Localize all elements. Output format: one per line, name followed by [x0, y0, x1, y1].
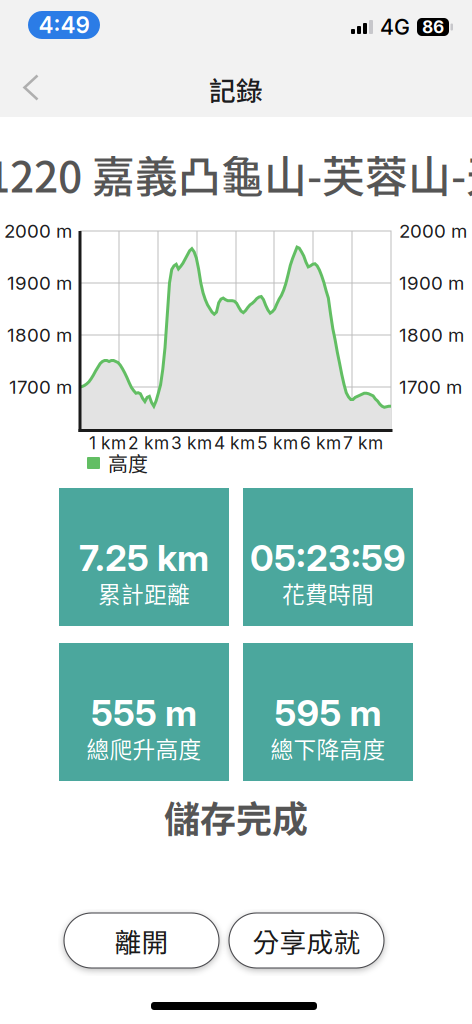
staticText: 2 km [128, 432, 169, 453]
staticText: 1220 嘉義凸龜山-芙蓉山-天 [0, 143, 472, 205]
staticText: 1700 m [399, 376, 462, 398]
staticText: 555 m [91, 691, 197, 735]
button[interactable]: 05:23:59 [243, 488, 413, 626]
staticText: 分享成就 [252, 921, 360, 960]
staticText: 7 km [343, 432, 383, 453]
button[interactable]: Back [9, 60, 53, 115]
staticText: 儲存完成 [164, 791, 308, 843]
staticText: 4:49 [38, 11, 89, 39]
staticText: 5 km [257, 432, 298, 453]
staticText: 高度 [108, 448, 148, 477]
button[interactable]: 555 m [59, 643, 229, 781]
staticText: 總爬升高度 [86, 732, 201, 764]
staticText: 1700 m [9, 376, 72, 398]
staticText: 總下降高度 [270, 732, 385, 764]
staticText: 6 km [300, 432, 341, 453]
staticText: 記錄 [209, 70, 263, 108]
staticText: 離開 [114, 921, 168, 960]
button[interactable]: 7.25 km [59, 488, 229, 626]
staticText: 累計距離 [98, 577, 190, 609]
staticText: 1900 m [399, 272, 464, 294]
staticText: 1800 m [7, 324, 72, 346]
staticText: 595 m [274, 691, 381, 735]
staticText: 7.25 km [79, 536, 209, 580]
staticText: 2000 m [399, 220, 467, 242]
staticText: 1800 m [399, 324, 464, 346]
staticText: 花費時間 [282, 577, 374, 609]
button[interactable]: 分享成就 [229, 913, 384, 968]
staticText: 3 km [171, 432, 212, 453]
staticText: 1 km [89, 432, 126, 453]
button[interactable]: 離開 [64, 913, 219, 968]
button[interactable]: 595 m [243, 643, 413, 781]
staticText: 86 [422, 16, 444, 37]
staticText: 4 km [214, 432, 255, 453]
staticText: 2000 m [4, 220, 72, 242]
staticText: 05:23:59 [250, 536, 406, 580]
staticText: 4G [380, 14, 410, 40]
staticText: 1900 m [7, 272, 72, 294]
